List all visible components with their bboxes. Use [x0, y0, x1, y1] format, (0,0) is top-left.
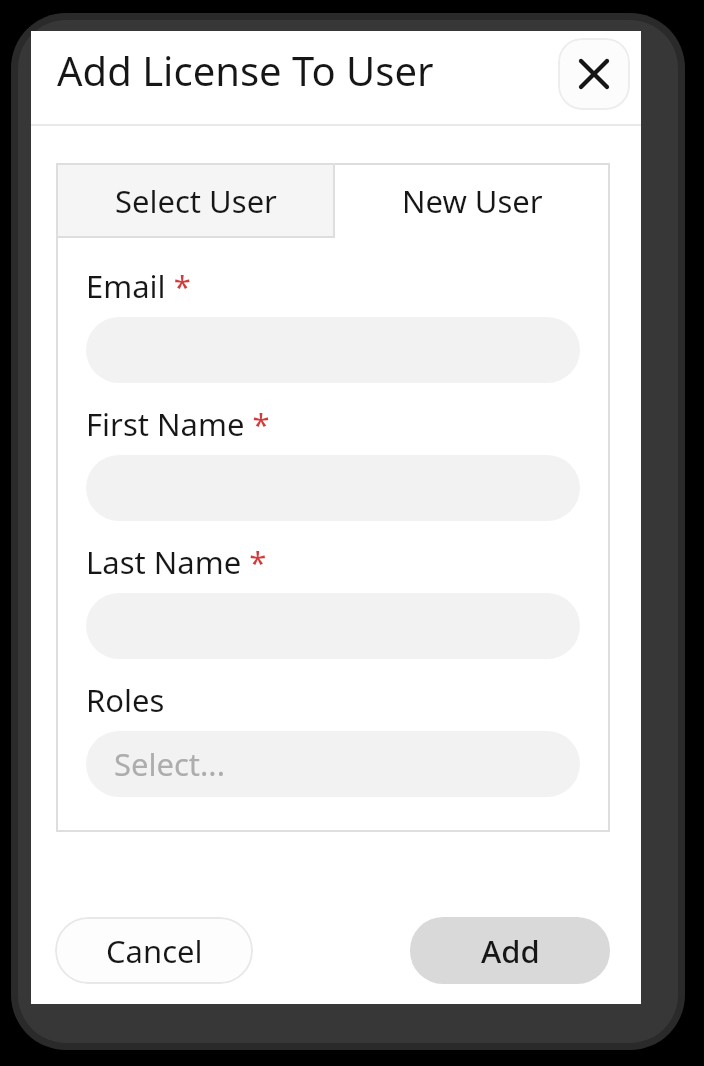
staticText: Select... — [114, 743, 225, 785]
button[interactable]: Add — [410, 917, 610, 984]
button[interactable]: Cancel — [55, 917, 253, 984]
button[interactable] — [558, 38, 630, 110]
staticText: First Name * — [86, 403, 270, 445]
staticText: Cancel — [106, 930, 203, 972]
staticText: Select User — [115, 180, 277, 222]
staticText: Add — [481, 930, 540, 972]
staticText: New User — [402, 180, 543, 222]
button[interactable]: New User — [335, 163, 610, 238]
staticText: Email * — [86, 265, 191, 307]
button[interactable]: Select... — [86, 731, 580, 797]
staticText: Last Name * — [86, 541, 267, 583]
button[interactable]: Select User — [56, 163, 335, 238]
staticText: Roles — [86, 679, 165, 721]
staticText: Add License To User — [57, 43, 434, 97]
